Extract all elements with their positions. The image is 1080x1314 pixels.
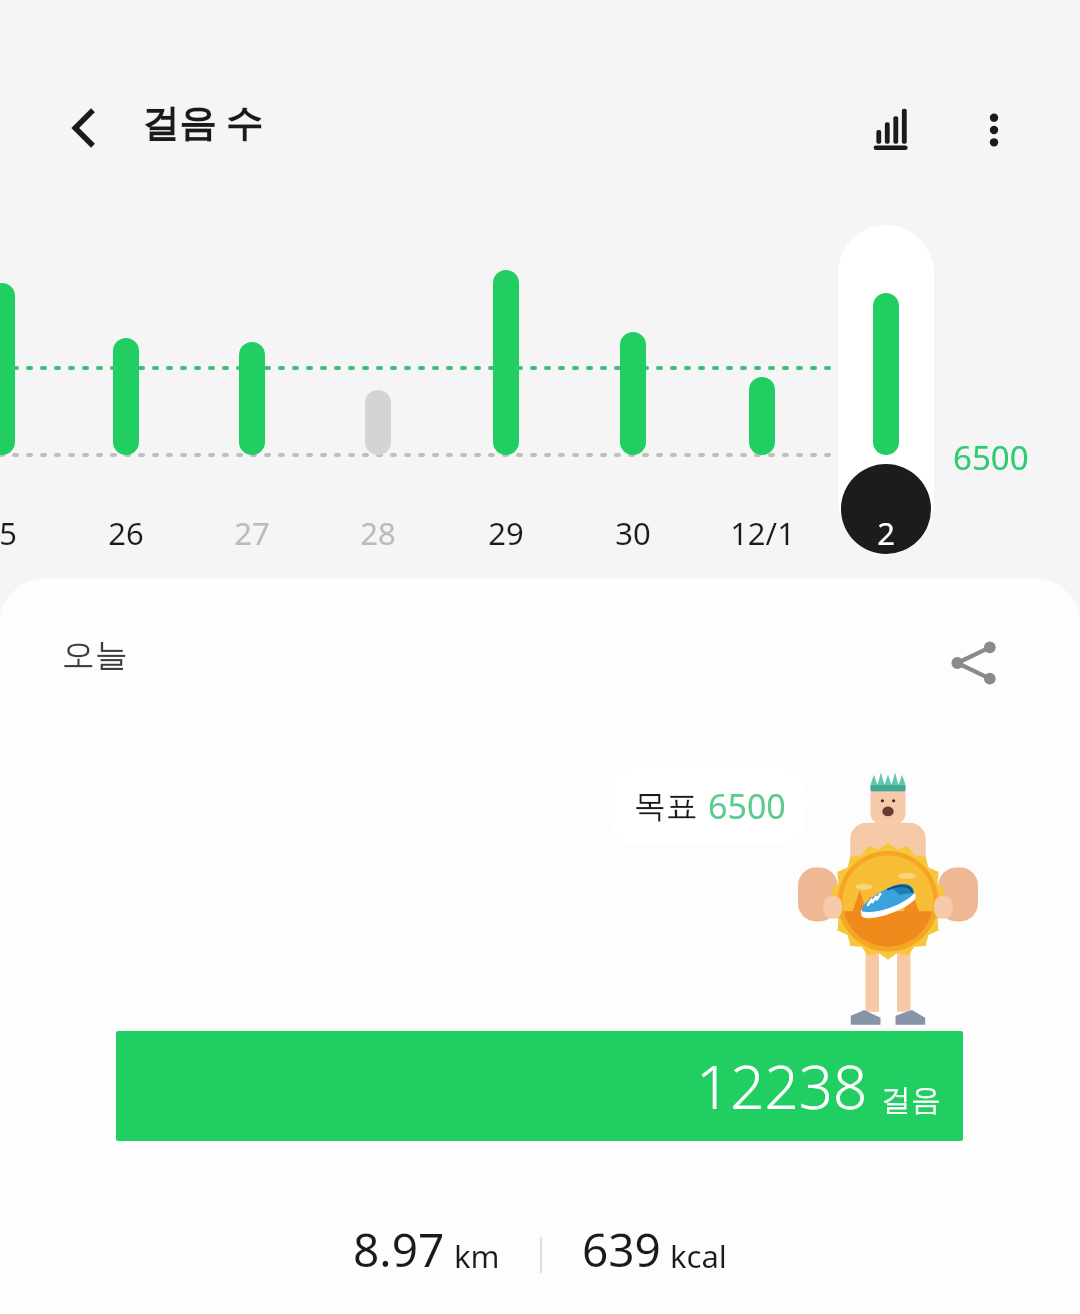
button[interactable]: Share [930,620,1016,706]
staticText: 12/1 [730,512,795,554]
button[interactable]: 30 [573,512,693,554]
staticText: 2 [877,512,895,554]
button[interactable]: 12238 [116,1031,963,1141]
staticText: km [454,1235,500,1277]
staticText: 28 [360,512,396,554]
staticText: 6500 [708,783,786,829]
button[interactable]: 오늘 [62,634,128,676]
staticText: 639 [582,1218,661,1281]
button[interactable]: 28 [318,512,438,554]
button[interactable]: 29 [446,512,566,554]
staticText: 6500 [953,435,1029,480]
button[interactable]: 26 [66,512,186,554]
staticText: 5 [0,512,17,554]
button[interactable]: 5 [0,512,68,554]
button[interactable]: 2 [826,512,946,554]
staticText: kcal [670,1235,727,1277]
button[interactable]: 12/1 [702,512,822,554]
button[interactable]: Chart [856,94,928,166]
staticText: 29 [488,512,524,554]
staticText: 걸음 [881,1081,941,1119]
staticText: 26 [108,512,144,554]
button[interactable]: 639 [582,1218,727,1281]
staticText: 8.97 [353,1218,445,1281]
staticText: 12238 [696,1045,868,1127]
button[interactable]: 27 [192,512,312,554]
button[interactable]: 8.97 [353,1218,500,1281]
staticText: 27 [234,512,270,554]
staticText: 목표 [634,786,698,826]
staticText: 걸음 수 [142,96,263,147]
staticText: 30 [615,512,651,554]
button[interactable]: More options [958,94,1030,166]
button[interactable]: Back [48,92,120,164]
